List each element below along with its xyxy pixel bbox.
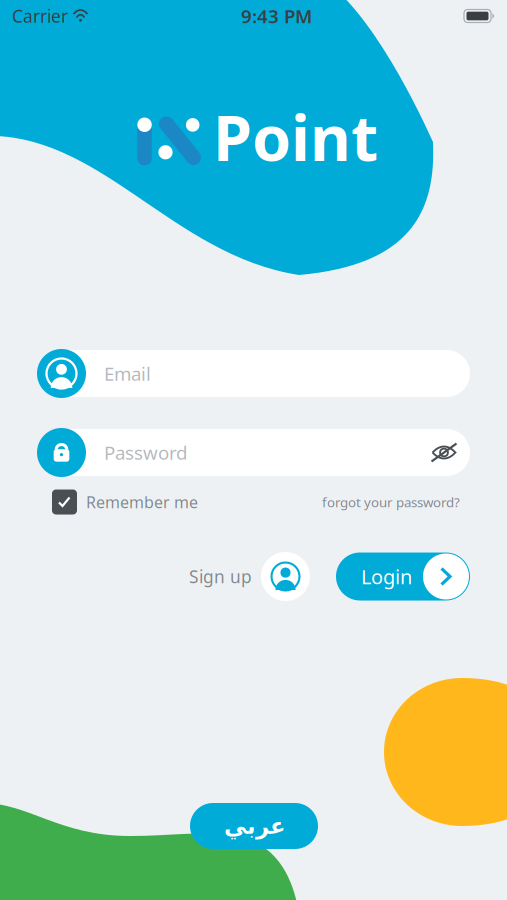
staticText: Password [104, 440, 187, 465]
staticText: Remember me [86, 491, 198, 513]
button[interactable]: عربي [190, 803, 318, 849]
staticText: 9:43 PM [241, 4, 312, 28]
staticText: Point [213, 95, 378, 178]
button[interactable]: Email [0, 349, 507, 398]
staticText: forgot your password? [322, 493, 460, 511]
staticText: Login [361, 563, 412, 590]
button[interactable]: Password [0, 428, 507, 477]
button[interactable]: forgot your password? [322, 487, 460, 517]
button[interactable]: Remember me [52, 487, 198, 517]
staticText: Email [104, 361, 151, 386]
button[interactable]: Login [336, 552, 470, 600]
staticText: Sign up [189, 565, 252, 588]
staticText: عربي [223, 813, 284, 839]
staticText: Carrier [12, 4, 68, 27]
button[interactable]: Sign up [189, 552, 310, 601]
